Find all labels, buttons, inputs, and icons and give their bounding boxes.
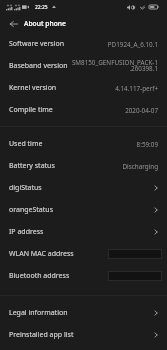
staticText: 8:59:09 <box>136 140 158 149</box>
button[interactable]: Back <box>3 14 24 33</box>
button[interactable]: Kernel version <box>0 77 167 99</box>
staticText: orangeStatus <box>9 205 53 215</box>
staticText: WLAN MAC address <box>9 249 74 259</box>
button[interactable]: IP address <box>0 221 167 243</box>
staticText: Compile time <box>9 105 53 115</box>
staticText: SM8150_GENFUSION_PACK-1 .260398.1 <box>71 58 158 73</box>
staticText: About phone <box>24 19 66 28</box>
staticText: Bluetooth address <box>9 271 70 281</box>
button[interactable]: Compile time <box>0 99 167 121</box>
button[interactable]: Software version <box>0 33 167 55</box>
button[interactable]: Bluetooth address <box>0 265 167 287</box>
staticText: digiStatus <box>9 183 42 193</box>
staticText: 22:25 <box>35 4 48 11</box>
staticText: Software version <box>9 39 65 49</box>
staticText: Legal information <box>9 308 68 318</box>
staticText: Kernel version <box>9 83 57 93</box>
staticText: PD1924_A_6.10.1 <box>107 40 158 49</box>
button[interactable]: Preinstalled app list <box>0 324 167 346</box>
button[interactable]: Legal information <box>0 302 167 324</box>
button[interactable]: orangeStatus <box>0 199 167 221</box>
staticText: 2020-04-07 <box>125 106 158 115</box>
staticText: Preinstalled app list <box>9 330 74 340</box>
staticText: Discharging <box>122 162 158 171</box>
staticText: Used time <box>9 139 43 149</box>
staticText: IP address <box>9 227 44 237</box>
button[interactable]: WLAN MAC address <box>0 243 167 265</box>
button[interactable]: Battery status <box>0 155 167 177</box>
button[interactable]: digiStatus <box>0 177 167 199</box>
staticText: Battery status <box>9 161 55 171</box>
staticText: 4.14.117-perf+ <box>115 84 158 93</box>
button[interactable]: Used time <box>0 133 167 155</box>
button[interactable]: Baseband version <box>0 55 167 77</box>
staticText: Baseband version <box>9 61 68 71</box>
